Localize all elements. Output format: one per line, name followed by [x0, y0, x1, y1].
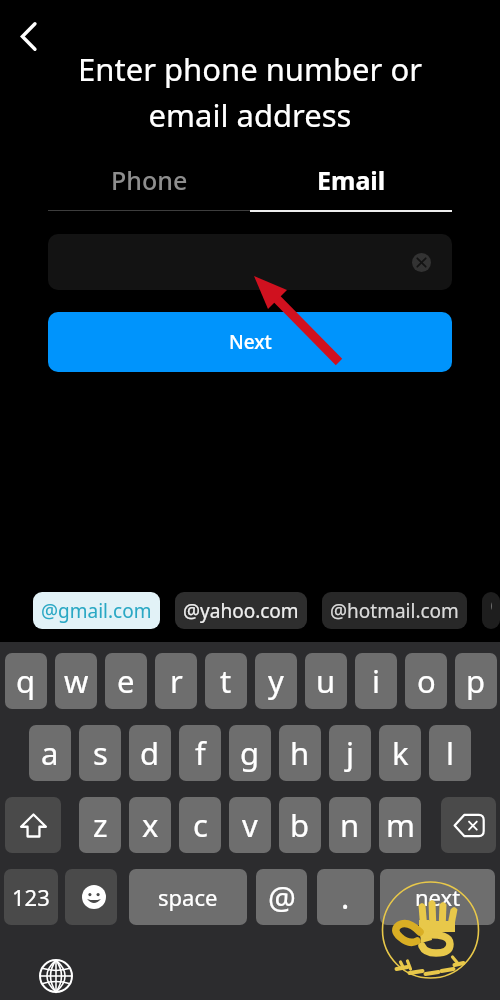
button[interactable]: l	[429, 725, 471, 781]
button[interactable]: r	[155, 653, 197, 709]
staticText: r	[170, 660, 183, 702]
staticText: m	[386, 804, 415, 846]
staticText: e	[117, 660, 135, 702]
staticText: g	[240, 732, 260, 774]
button[interactable]: m	[379, 797, 421, 853]
staticText: x	[142, 804, 159, 846]
staticText: n	[340, 804, 360, 846]
staticText: Next	[229, 329, 272, 355]
button[interactable]: p	[455, 653, 497, 709]
staticText: Phone	[111, 163, 188, 197]
other: Shift	[20, 813, 47, 838]
button[interactable]: c	[179, 797, 221, 853]
button[interactable]: o	[405, 653, 447, 709]
button[interactable]: @ou	[482, 592, 500, 629]
button[interactable]: .	[317, 869, 374, 925]
button[interactable]: d	[129, 725, 171, 781]
button[interactable]: Phone	[48, 160, 250, 200]
button[interactable]: n	[329, 797, 371, 853]
button[interactable]: Clear text	[48, 234, 452, 290]
button[interactable]: q	[5, 653, 47, 709]
staticText: 123	[12, 882, 50, 912]
button[interactable]: @gmail.com	[33, 592, 160, 629]
staticText: o	[417, 660, 436, 702]
button[interactable]: w	[55, 653, 97, 709]
button[interactable]: @	[256, 869, 307, 925]
staticText: w	[64, 660, 89, 702]
button[interactable]: Back	[4, 12, 52, 60]
button[interactable]: Clear text	[407, 248, 435, 276]
staticText: Enter phone number or email address	[20, 48, 480, 136]
button[interactable]: j	[329, 725, 371, 781]
button[interactable]: u	[305, 653, 347, 709]
staticText: next	[415, 882, 461, 912]
staticText: v	[242, 804, 258, 846]
button[interactable]: t	[205, 653, 247, 709]
button[interactable]: y	[255, 653, 297, 709]
button[interactable]: b	[279, 797, 321, 853]
button[interactable]: i	[355, 653, 397, 709]
button[interactable]: Shift	[5, 797, 61, 853]
button[interactable]: f	[179, 725, 221, 781]
button[interactable]: Next	[48, 312, 452, 372]
staticText: y	[268, 660, 284, 702]
staticText: k	[392, 732, 409, 774]
staticText: j	[346, 732, 354, 774]
staticText: @yahoo.com	[183, 598, 299, 624]
staticText: i	[372, 660, 380, 702]
staticText: q	[16, 660, 36, 702]
button[interactable]: k	[379, 725, 421, 781]
button[interactable]: Email	[250, 160, 452, 200]
staticText: f	[195, 732, 206, 774]
button[interactable]: Backspace	[441, 797, 496, 853]
staticText: @	[268, 876, 296, 918]
button[interactable]: @yahoo.com	[175, 592, 307, 629]
other: Emoji	[79, 885, 103, 909]
staticText: h	[290, 732, 310, 774]
button[interactable]: s	[79, 725, 121, 781]
button[interactable]: @hotmail.com	[322, 592, 467, 629]
button[interactable]: space	[129, 869, 247, 925]
staticText: space	[158, 882, 218, 912]
button[interactable]: v	[229, 797, 271, 853]
staticText: s	[93, 732, 108, 774]
staticText: z	[93, 804, 108, 846]
staticText: a	[41, 732, 59, 774]
button[interactable]: g	[229, 725, 271, 781]
staticText: l	[446, 732, 454, 774]
button[interactable]: e	[105, 653, 147, 709]
button[interactable]: 123	[4, 869, 58, 925]
staticText: u	[316, 660, 336, 702]
button[interactable]: Change keyboard language	[39, 959, 73, 993]
staticText: Email	[317, 163, 386, 197]
staticText: @gmail.com	[41, 598, 152, 624]
staticText: @ou	[490, 592, 492, 629]
staticText: @hotmail.com	[330, 598, 459, 624]
button[interactable]: Emoji	[65, 869, 117, 925]
button[interactable]: a	[29, 725, 71, 781]
staticText: p	[466, 660, 486, 702]
button[interactable]: z	[79, 797, 121, 853]
button[interactable]: x	[129, 797, 171, 853]
button[interactable]: next	[380, 869, 495, 925]
staticText: .	[341, 876, 350, 918]
staticText: d	[140, 732, 160, 774]
button[interactable]: h	[279, 725, 321, 781]
staticText: c	[193, 804, 208, 846]
staticText: t	[220, 660, 232, 702]
staticText: b	[290, 804, 310, 846]
other: Backspace	[454, 814, 484, 837]
